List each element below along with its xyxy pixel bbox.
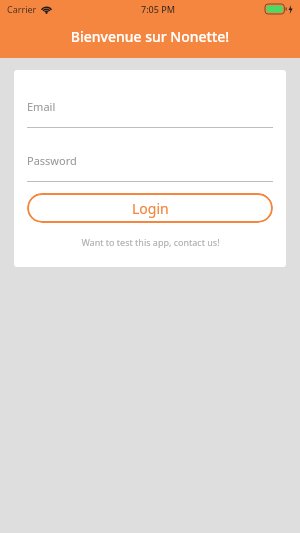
staticText: 7:05 PM [141, 3, 175, 15]
staticText: Email [27, 99, 56, 114]
staticText: Password [27, 153, 77, 168]
staticText: Bienvenue sur Nonette! [0, 27, 300, 46]
staticText: Login [132, 199, 169, 218]
staticText: Carrier [7, 3, 37, 15]
button[interactable]: Email [27, 99, 273, 128]
staticText: Want to test this app, contact us! [81, 236, 220, 248]
button[interactable]: Want to test this app, contact us! [27, 236, 273, 248]
button[interactable]: Login [27, 193, 273, 223]
button[interactable]: Password [27, 153, 273, 182]
